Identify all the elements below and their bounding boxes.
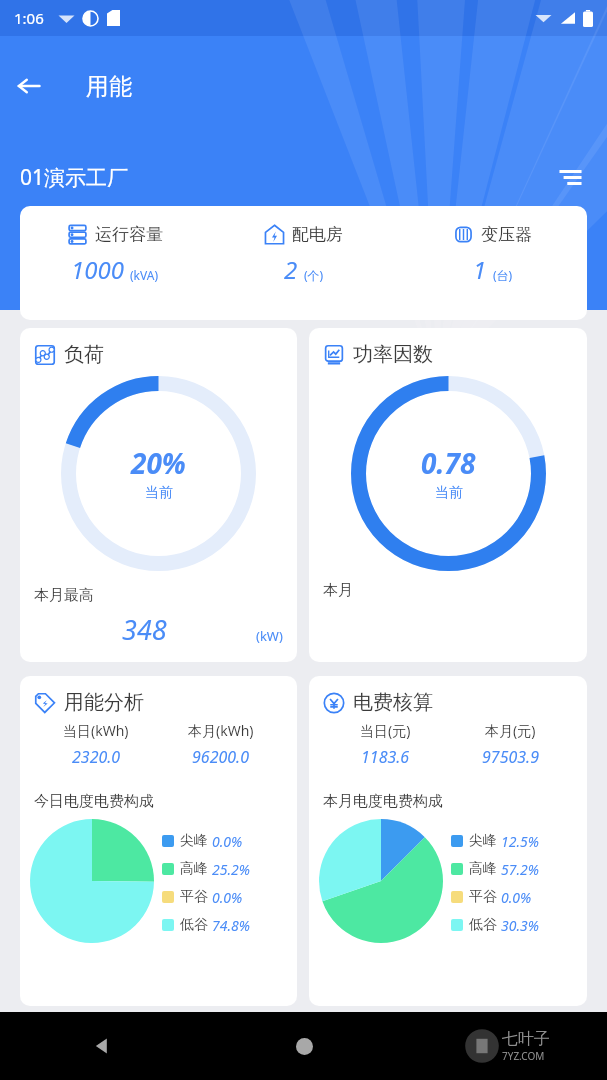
button[interactable]: 运行容量	[20, 206, 587, 320]
staticText: (kW)	[256, 627, 283, 645]
button[interactable]: Back	[0, 58, 56, 114]
staticText: 0.0%	[212, 832, 243, 851]
staticText: 1:06	[14, 8, 44, 28]
staticText: 尖峰	[469, 832, 497, 850]
staticText: 电费核算	[353, 690, 433, 715]
button[interactable]: Home	[203, 1012, 405, 1080]
staticText: 01演示工厂	[20, 163, 129, 192]
staticText: 7YZ.COM	[502, 1049, 545, 1063]
button[interactable]: Menu	[549, 156, 591, 198]
staticText: 57.2%	[501, 860, 539, 879]
staticText: 平谷	[180, 888, 208, 906]
staticText: 变压器	[481, 224, 532, 245]
staticText: 当日(kWh)	[63, 721, 129, 740]
staticText: 本月	[323, 581, 353, 600]
staticText: 当前	[145, 484, 173, 502]
staticText: 本月最高	[34, 586, 94, 605]
staticText: 七叶子	[502, 1029, 550, 1049]
staticText: 配电房	[292, 224, 343, 245]
staticText: 负荷	[64, 342, 104, 367]
staticText: (个)	[304, 267, 324, 283]
staticText: 低谷	[469, 916, 497, 934]
staticText: (台)	[493, 267, 513, 283]
staticText: 12.5%	[501, 832, 539, 851]
staticText: 0.0%	[501, 888, 532, 907]
staticText: 低谷	[180, 916, 208, 934]
staticText: 当日(元)	[360, 721, 411, 740]
staticText: 30.3%	[501, 916, 539, 935]
staticText: 本月(元)	[485, 721, 536, 740]
staticText: 96200.0	[192, 746, 249, 768]
staticText: 用能分析	[64, 690, 144, 715]
staticText: 功率因数	[353, 342, 433, 367]
button[interactable]: 电费核算	[309, 676, 587, 1006]
staticText: 1000	[71, 253, 124, 286]
staticText: 20%	[131, 444, 186, 482]
staticText: 2	[284, 253, 298, 286]
button[interactable]: 用能分析	[20, 676, 297, 1006]
button[interactable]: 负荷	[20, 328, 297, 662]
staticText: 用能	[86, 72, 132, 101]
staticText: 25.2%	[212, 860, 250, 879]
button[interactable]: Back	[0, 1012, 203, 1080]
staticText: 运行容量	[95, 224, 163, 245]
staticText: 2320.0	[72, 746, 121, 768]
staticText: 348	[122, 611, 167, 648]
staticText: 本月(kWh)	[188, 721, 254, 740]
staticText: 97503.9	[482, 746, 539, 768]
staticText: 74.8%	[212, 916, 250, 935]
staticText: (kVA)	[130, 267, 158, 283]
staticText: 1	[473, 253, 487, 286]
staticText: 今日电度电费构成	[34, 792, 154, 811]
staticText: 平谷	[469, 888, 497, 906]
staticText: 0.0%	[212, 888, 243, 907]
staticText: 高峰	[469, 860, 497, 878]
staticText: 高峰	[180, 860, 208, 878]
staticText: 1183.6	[361, 746, 410, 768]
staticText: 当前	[435, 484, 463, 502]
staticText: 尖峰	[180, 832, 208, 850]
staticText: 本月电度电费构成	[323, 792, 443, 811]
button[interactable]: 功率因数	[309, 328, 587, 662]
staticText: 0.78	[421, 444, 476, 482]
